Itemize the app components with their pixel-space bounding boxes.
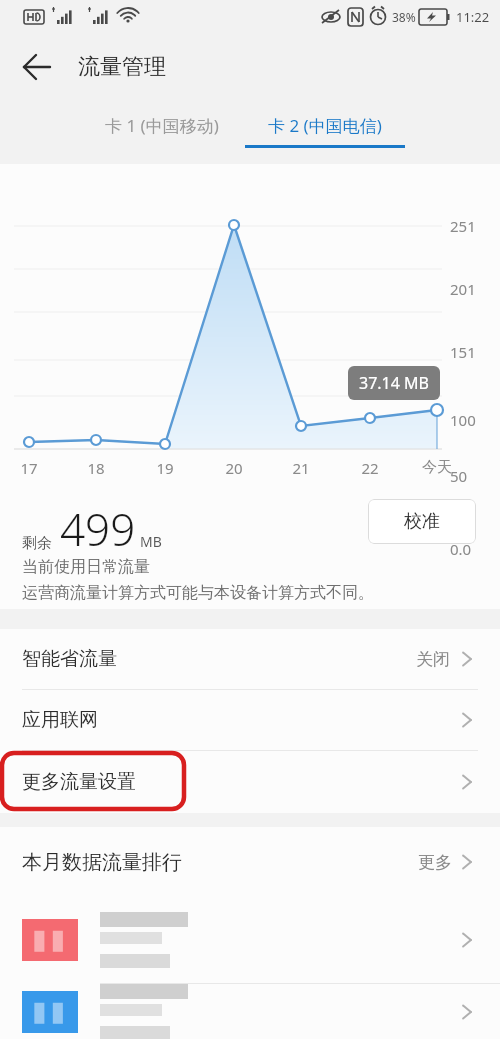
- staticText: 更多流量设置: [22, 770, 136, 794]
- staticText: 今天: [417, 458, 457, 477]
- staticText: 剩余: [22, 534, 52, 553]
- staticText: 卡 1 (中国移动): [105, 114, 219, 137]
- staticText: 50: [450, 466, 468, 486]
- staticText: 更多: [418, 852, 452, 873]
- button[interactable]: 校准: [368, 499, 476, 544]
- staticText: 151: [450, 342, 476, 362]
- staticText: 流量管理: [78, 53, 166, 81]
- button[interactable]: 返回: [12, 43, 60, 91]
- staticText: 运营商流量计算方式可能与本设备计算方式不同。: [22, 583, 374, 603]
- button[interactable]: 本月数据流量排行: [0, 827, 500, 897]
- staticText: 本月数据流量排行: [22, 850, 182, 875]
- staticText: 关闭: [416, 649, 450, 670]
- staticText: 251: [450, 216, 476, 236]
- staticText: 38%: [392, 9, 416, 25]
- button[interactable]: 卡 1 (中国移动): [95, 106, 229, 145]
- staticText: 37.14 MB: [359, 372, 429, 394]
- staticText: 智能省流量: [22, 647, 117, 671]
- staticText: 0.0: [450, 539, 472, 559]
- button[interactable]: 更多流量设置: [0, 751, 500, 813]
- staticText: 21: [281, 458, 321, 478]
- staticText: 22: [350, 458, 390, 478]
- button[interactable]: 卡 2 (中国电信): [245, 106, 405, 148]
- staticText: 11:22: [456, 8, 490, 26]
- staticText: 18: [76, 458, 116, 478]
- staticText: 17: [9, 458, 49, 478]
- button[interactable]: 应用联网: [0, 690, 500, 750]
- staticText: 201: [450, 279, 476, 299]
- button[interactable]: [0, 984, 500, 1039]
- staticText: 当前使用日常流量: [22, 557, 150, 577]
- staticText: 100: [450, 410, 476, 430]
- staticText: 应用联网: [22, 708, 98, 732]
- staticText: 20: [214, 458, 254, 478]
- staticText: 校准: [404, 510, 440, 533]
- button[interactable]: 智能省流量: [0, 629, 500, 689]
- staticText: 卡 2 (中国电信): [268, 114, 382, 137]
- button[interactable]: [0, 897, 500, 983]
- staticText: MB: [140, 532, 162, 551]
- staticText: 19: [145, 458, 185, 478]
- staticText: 499: [60, 499, 136, 559]
